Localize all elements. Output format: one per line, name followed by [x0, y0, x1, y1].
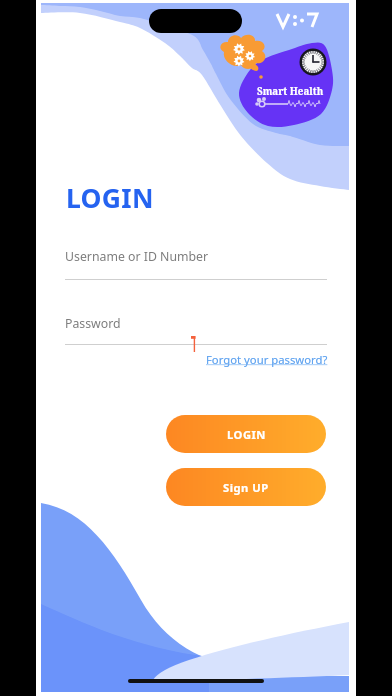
- staticText: Forgot your password?: [206, 352, 328, 367]
- staticText: Sign UP: [223, 480, 269, 495]
- staticText: Password: [65, 315, 121, 332]
- button[interactable]: Sign UP: [166, 468, 326, 506]
- button[interactable]: LOGIN: [166, 415, 326, 453]
- staticText: Smart Health: [257, 85, 324, 98]
- staticText: Username or ID Number: [65, 248, 209, 265]
- button[interactable]: Forgot your password?: [204, 351, 330, 368]
- staticText: LOGIN: [66, 180, 154, 216]
- staticText: LOGIN: [227, 427, 266, 442]
